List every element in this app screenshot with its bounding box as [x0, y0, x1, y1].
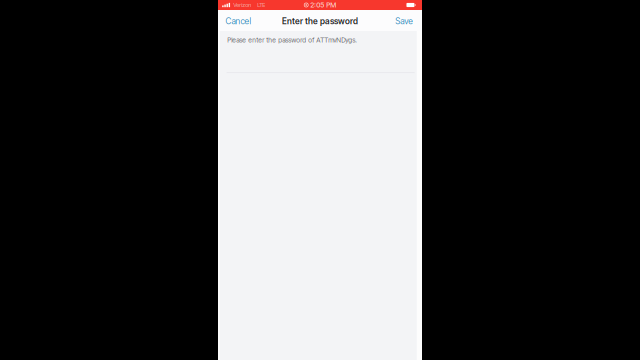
staticText: Please enter the password of ATTmvNDygs. [227, 36, 357, 44]
staticText: Cancel [225, 16, 251, 26]
staticText: Verizon [233, 1, 251, 8]
staticText: Save [395, 16, 413, 26]
staticText: Enter the password [282, 16, 358, 26]
button[interactable]: Save [389, 10, 422, 31]
staticText: LTE [257, 1, 265, 8]
button[interactable]: Cancel [218, 10, 257, 31]
staticText: 2:05 PM [310, 1, 336, 9]
